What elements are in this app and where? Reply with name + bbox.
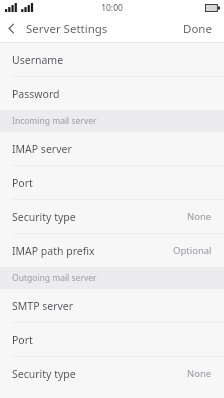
button[interactable]: Port	[0, 166, 224, 199]
staticText: Done	[183, 21, 212, 37]
button[interactable]: IMAP path prefix	[0, 234, 224, 267]
button[interactable]: IMAP server	[0, 132, 224, 165]
button[interactable]: Port	[0, 323, 224, 356]
button[interactable]: SMTP server	[0, 289, 224, 322]
staticText: Security type	[12, 210, 76, 224]
staticText: None	[187, 210, 212, 223]
staticText: Outgoing mail server	[12, 272, 97, 284]
staticText: IMAP path prefix	[12, 244, 95, 258]
staticText: Password	[12, 87, 60, 101]
staticText: None	[187, 367, 212, 380]
button[interactable]: Password	[0, 77, 224, 110]
staticText: SMTP server	[12, 299, 74, 313]
button[interactable]: Back	[0, 15, 20, 42]
staticText: Security type	[12, 367, 76, 381]
staticText: Port	[12, 333, 33, 347]
button[interactable]: Security type	[0, 357, 224, 390]
button[interactable]: Username	[0, 43, 224, 76]
button[interactable]: Done	[171, 15, 224, 42]
button[interactable]: Security type	[0, 200, 224, 233]
staticText: 10:00	[101, 2, 123, 14]
staticText: IMAP server	[12, 142, 72, 156]
staticText: Optional	[173, 244, 212, 257]
staticText: Server Settings	[26, 21, 108, 37]
staticText: Incoming mail server	[12, 115, 97, 127]
staticText: Port	[12, 176, 33, 190]
staticText: Username	[12, 53, 64, 67]
